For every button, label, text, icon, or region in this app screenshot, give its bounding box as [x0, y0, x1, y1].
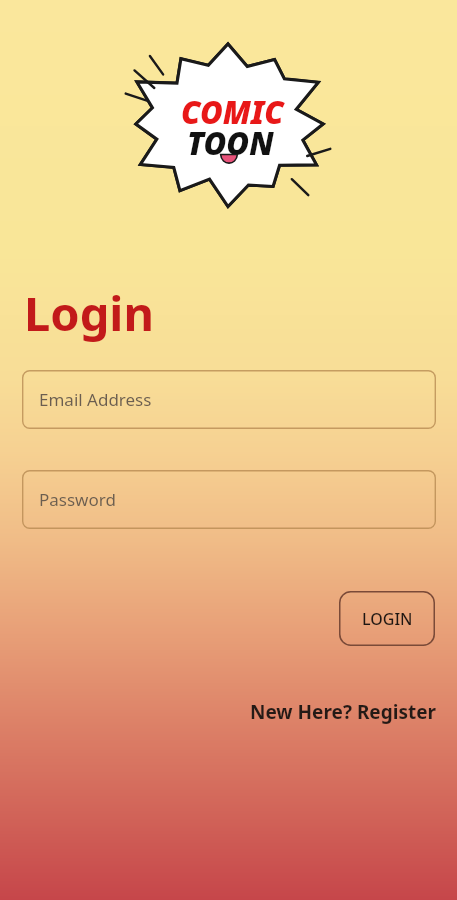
other: Comic Toon logo: [118, 44, 338, 204]
button[interactable]: Password: [22, 470, 436, 529]
staticText: Email Address: [39, 388, 152, 411]
staticText: New Here? Register: [249, 699, 436, 725]
staticText: TOON: [187, 122, 274, 164]
button[interactable]: New Here? Register: [208, 695, 436, 729]
button[interactable]: LOGIN: [339, 591, 435, 646]
staticText: COMIC: [181, 91, 284, 133]
staticText: LOGIN: [362, 608, 413, 630]
staticText: Login: [24, 281, 154, 345]
button[interactable]: Email Address: [22, 370, 436, 429]
staticText: Password: [39, 488, 116, 511]
